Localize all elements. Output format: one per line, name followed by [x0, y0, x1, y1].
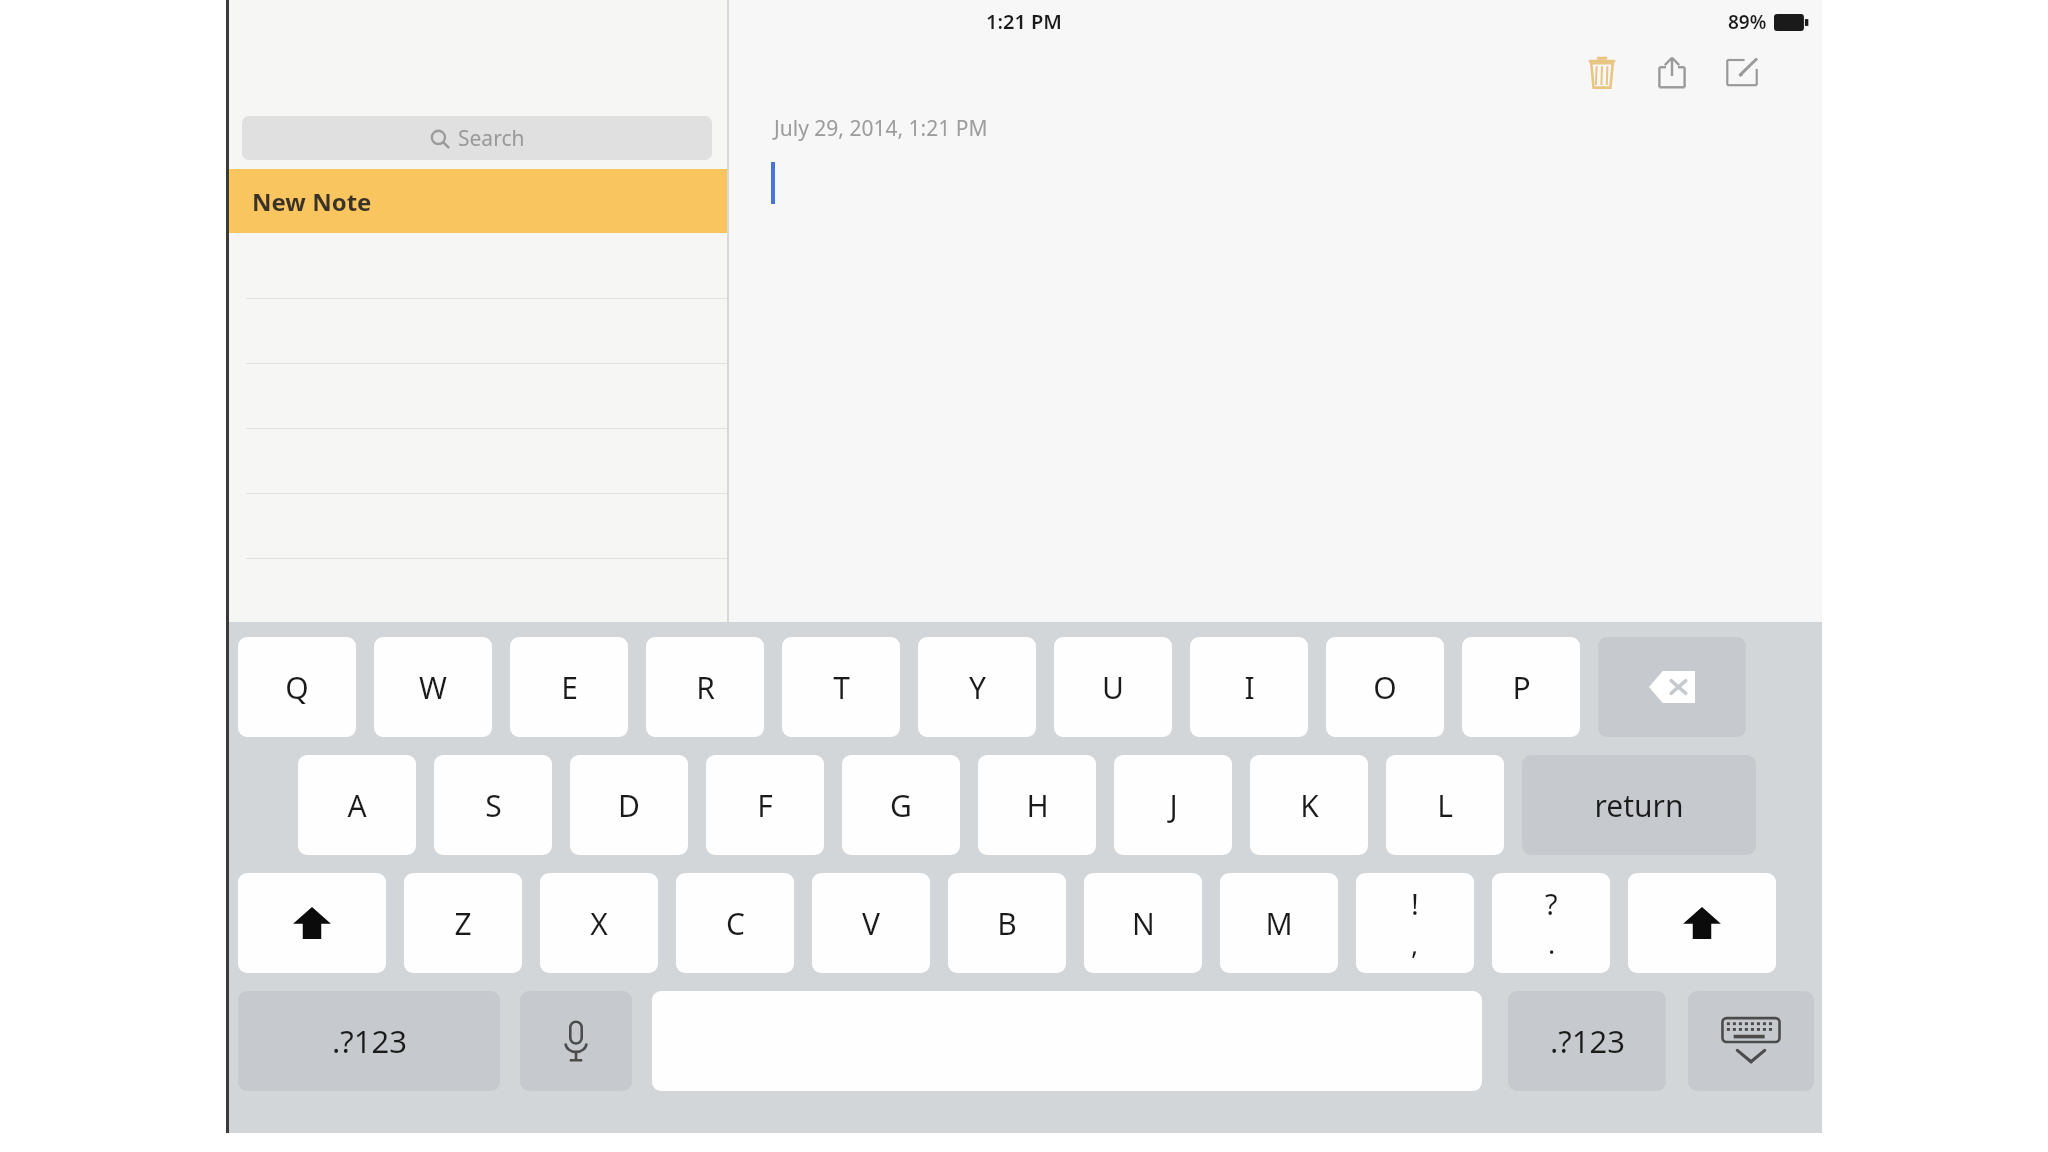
staticText: P — [1512, 667, 1531, 708]
staticText: C — [726, 903, 745, 944]
staticText: D — [618, 785, 640, 826]
button[interactable]: New Note — [226, 169, 727, 233]
button[interactable]: New note — [1712, 42, 1772, 102]
button[interactable]: V — [812, 873, 930, 973]
button[interactable]: F — [706, 755, 824, 855]
staticText: F — [757, 785, 773, 826]
staticText: L — [1437, 785, 1453, 826]
staticText: ? — [1545, 884, 1558, 923]
button[interactable]: M — [1220, 873, 1338, 973]
button[interactable] — [226, 558, 727, 623]
staticText: S — [485, 785, 502, 826]
staticText: 89% — [1728, 9, 1767, 35]
staticText: W — [419, 667, 447, 708]
staticText: I — [1244, 667, 1255, 708]
button[interactable]: H — [978, 755, 1096, 855]
staticText: ! — [1411, 884, 1419, 923]
staticText: M — [1265, 903, 1293, 944]
button[interactable]: ? — [1492, 873, 1610, 973]
button[interactable]: E — [510, 637, 628, 737]
staticText: Search — [458, 124, 525, 153]
staticText: New Note — [252, 185, 372, 218]
staticText: Z — [454, 903, 472, 944]
button[interactable]: P — [1462, 637, 1580, 737]
button[interactable]: Delete — [1572, 42, 1632, 102]
staticText: B — [997, 903, 1017, 944]
button[interactable]: K — [1250, 755, 1368, 855]
staticText: 1:21 PM — [986, 8, 1062, 35]
button[interactable]: T — [782, 637, 900, 737]
staticText: H — [1026, 785, 1049, 826]
button[interactable]: Backspace — [1598, 637, 1746, 737]
button[interactable]: L — [1386, 755, 1504, 855]
button[interactable]: Dictate — [520, 991, 632, 1091]
button[interactable]: Hide keyboard — [1688, 991, 1814, 1091]
staticText: , — [1411, 925, 1419, 962]
button[interactable]: Y — [918, 637, 1036, 737]
staticText: .?123 — [332, 1020, 407, 1062]
button[interactable]: return — [1522, 755, 1756, 855]
button[interactable]: Shift — [1628, 873, 1776, 973]
button[interactable]: Q — [238, 637, 356, 737]
staticText: E — [561, 667, 578, 708]
staticText: return — [1594, 785, 1684, 826]
button[interactable]: .?123 — [238, 991, 500, 1091]
button[interactable] — [226, 298, 727, 363]
button[interactable] — [226, 428, 727, 493]
button[interactable]: R — [646, 637, 764, 737]
button[interactable]: W — [374, 637, 492, 737]
staticText: .?123 — [1550, 1020, 1625, 1062]
button[interactable]: Shift — [238, 873, 386, 973]
staticText: U — [1102, 667, 1124, 708]
button[interactable]: .?123 — [1508, 991, 1666, 1091]
button[interactable] — [226, 233, 727, 298]
button[interactable]: I — [1190, 637, 1308, 737]
staticText: . — [1548, 925, 1556, 962]
button[interactable]: G — [842, 755, 960, 855]
button[interactable]: U — [1054, 637, 1172, 737]
button[interactable]: S — [434, 755, 552, 855]
staticText: X — [590, 903, 608, 944]
button[interactable]: J — [1114, 755, 1232, 855]
staticText: July 29, 2014, 1:21 PM — [774, 114, 988, 143]
button[interactable]: D — [570, 755, 688, 855]
button[interactable]: B — [948, 873, 1066, 973]
staticText: O — [1373, 667, 1397, 708]
staticText: J — [1169, 785, 1178, 826]
button[interactable]: A — [298, 755, 416, 855]
staticText: R — [696, 667, 715, 708]
staticText: N — [1132, 903, 1155, 944]
button[interactable]: O — [1326, 637, 1444, 737]
staticText: Q — [285, 667, 309, 708]
button[interactable]: ! — [1356, 873, 1474, 973]
button[interactable]: Z — [404, 873, 522, 973]
staticText: Y — [969, 667, 986, 708]
staticText: A — [347, 785, 367, 826]
button[interactable]: Share — [1642, 42, 1702, 102]
staticText: G — [890, 785, 912, 826]
button[interactable] — [226, 363, 727, 428]
staticText: V — [862, 903, 880, 944]
button[interactable] — [226, 493, 727, 558]
staticText: K — [1300, 785, 1319, 826]
staticText: T — [833, 667, 850, 708]
button[interactable]: X — [540, 873, 658, 973]
button[interactable]: N — [1084, 873, 1202, 973]
button[interactable]: C — [676, 873, 794, 973]
button[interactable]: Search — [242, 116, 712, 160]
